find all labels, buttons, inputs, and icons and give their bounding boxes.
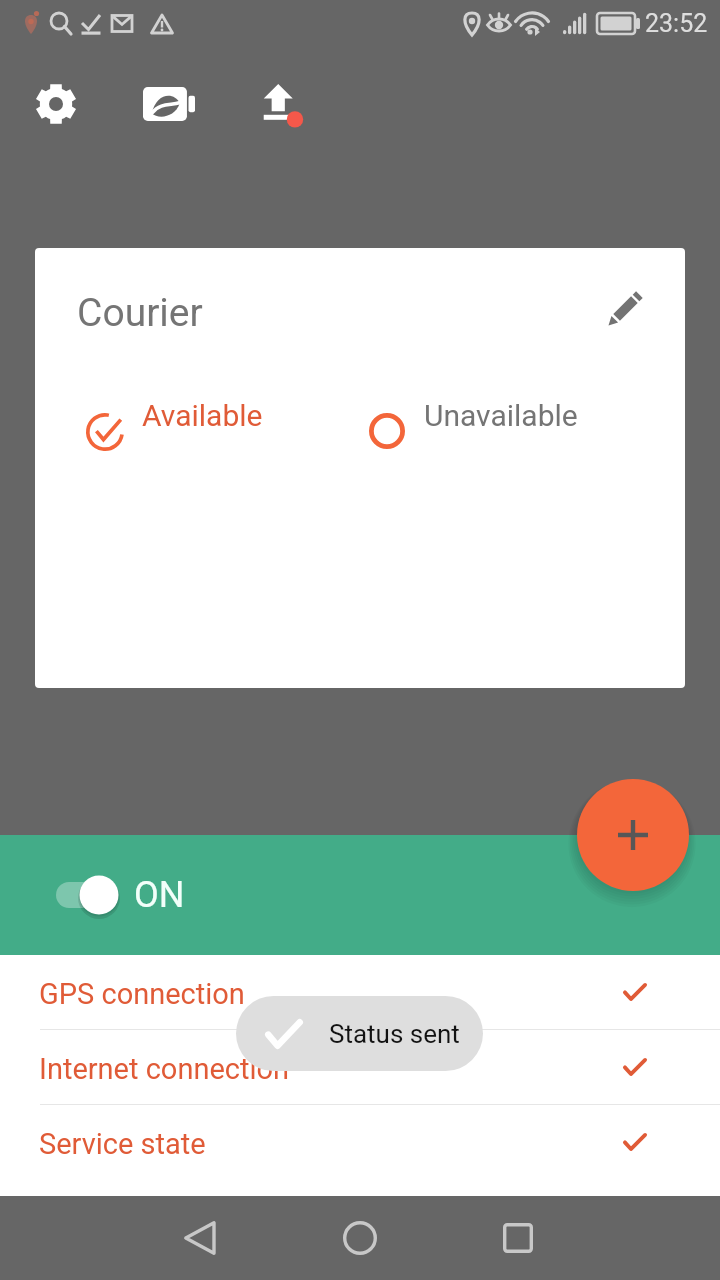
button[interactable]: Settings	[20, 68, 92, 140]
staticText: ON	[134, 874, 185, 916]
button[interactable]: Courier	[35, 248, 685, 688]
staticText: Internet connection	[39, 1052, 290, 1086]
button[interactable]: Home	[318, 1196, 402, 1280]
button[interactable]: Internet connection	[0, 1030, 720, 1104]
button[interactable]: GPS connection	[0, 955, 720, 1029]
button[interactable]: Back	[157, 1196, 241, 1280]
button[interactable]: Add	[577, 779, 689, 891]
staticText: Unavailable	[424, 398, 578, 433]
staticText: Courier	[77, 290, 203, 336]
button[interactable]: Battery saver	[133, 68, 205, 140]
button[interactable]: Available	[83, 398, 318, 464]
button[interactable]: Unavailable	[365, 398, 635, 464]
button[interactable]: Edit	[589, 272, 661, 344]
staticText: 23:52	[645, 9, 708, 38]
staticText: GPS connection	[39, 977, 245, 1011]
button[interactable]: Service state	[0, 1105, 720, 1179]
button[interactable]: ON	[44, 865, 199, 925]
button[interactable]: Upload	[244, 68, 316, 140]
button[interactable]: Recents	[476, 1196, 560, 1280]
staticText: Service state	[39, 1127, 206, 1161]
staticText: Status sent	[329, 1019, 460, 1049]
staticText: Available	[142, 398, 263, 433]
